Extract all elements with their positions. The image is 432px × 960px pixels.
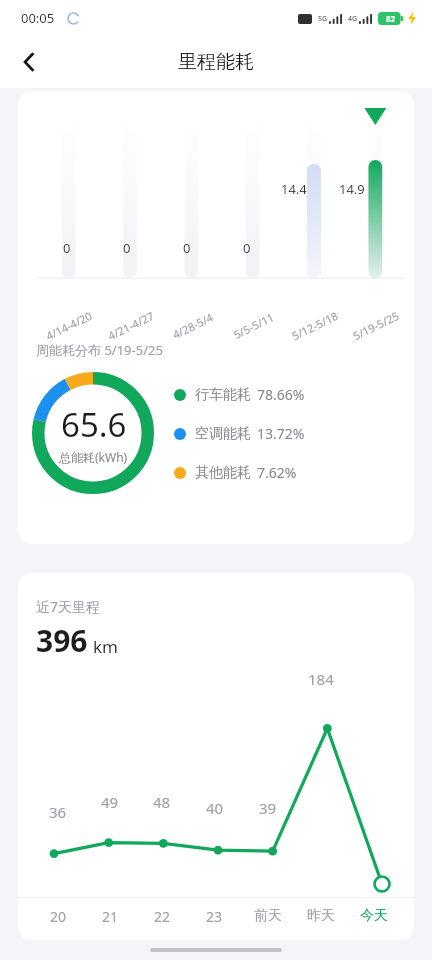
staticText: 周能耗分布 5/19-5/25 — [36, 341, 163, 359]
button[interactable]: 行车能耗 — [174, 385, 305, 404]
staticText: 14.4 — [281, 180, 307, 198]
staticText: 00:05 — [21, 9, 55, 27]
staticText: 14.9 — [339, 180, 365, 198]
staticText: 4/28-5/4 — [170, 309, 216, 342]
staticText: 7.62% — [257, 463, 297, 482]
staticText: 里程能耗 — [178, 50, 254, 74]
button[interactable]: Back — [7, 40, 51, 84]
button[interactable]: 22 — [154, 907, 171, 926]
staticText: 5/12-5/18 — [289, 308, 341, 343]
staticText: 空调能耗 — [195, 425, 251, 443]
staticText: 近7天里程 — [36, 597, 101, 616]
staticText: 49 — [101, 792, 119, 812]
staticText: 4G — [348, 14, 358, 24]
staticText: 36 — [49, 802, 67, 822]
button[interactable]: 21 — [102, 907, 119, 926]
button[interactable]: 23 — [206, 907, 223, 926]
staticText: 78.66% — [257, 385, 305, 404]
staticText: km — [93, 635, 118, 658]
staticText: 40 — [206, 798, 224, 818]
staticText: 5/19-5/25 — [350, 308, 402, 343]
button[interactable]: 前天 — [254, 907, 282, 925]
staticText: 0 — [243, 239, 251, 257]
staticText: 5/5-5/11 — [231, 309, 277, 342]
staticText: 65.6 — [61, 402, 127, 447]
staticText: 0 — [183, 239, 191, 257]
staticText: 82 — [386, 13, 396, 24]
staticText: 总能耗(kWh) — [59, 449, 128, 465]
staticText: 184 — [308, 669, 334, 689]
staticText: 4/21-4/27 — [105, 308, 157, 343]
staticText: 396 — [36, 620, 88, 661]
staticText: 0 — [63, 239, 71, 257]
button[interactable]: 今天 — [360, 907, 388, 925]
staticText: 行车能耗 — [195, 386, 251, 404]
staticText: 48 — [153, 792, 171, 812]
button[interactable]: 昨天 — [307, 907, 335, 925]
staticText: 4/14-4/20 — [43, 308, 95, 343]
staticText: 39 — [259, 798, 277, 818]
button[interactable]: 空调能耗 — [174, 424, 305, 443]
staticText: 5G — [318, 14, 328, 24]
staticText: 0 — [123, 239, 131, 257]
button[interactable]: 其他能耗 — [174, 463, 297, 482]
staticText: 13.72% — [257, 424, 305, 443]
button[interactable]: 20 — [50, 907, 67, 926]
staticText: 其他能耗 — [195, 464, 251, 482]
